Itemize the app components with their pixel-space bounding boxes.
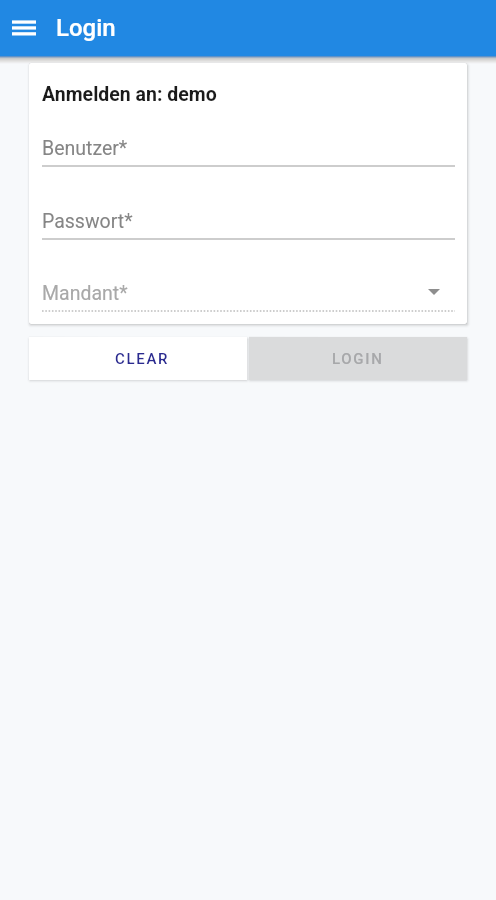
staticText: Benutzer* bbox=[42, 137, 128, 160]
staticText: CLEAR bbox=[115, 350, 170, 368]
staticText: Passwort* bbox=[42, 210, 133, 233]
other: Show tenant list bbox=[428, 289, 440, 295]
button[interactable]: LOGIN bbox=[249, 337, 467, 380]
staticText: Mandant* bbox=[42, 282, 128, 305]
button[interactable]: Benutzer* bbox=[42, 137, 455, 167]
staticText: Login bbox=[56, 14, 116, 42]
staticText: LOGIN bbox=[332, 350, 384, 368]
button[interactable]: Passwort* bbox=[42, 210, 455, 240]
staticText: Anmelden an: demo bbox=[42, 83, 217, 106]
button[interactable]: Mandant* bbox=[42, 282, 455, 312]
button[interactable]: CLEAR bbox=[29, 337, 247, 380]
button[interactable]: Open navigation drawer bbox=[0, 4, 48, 52]
